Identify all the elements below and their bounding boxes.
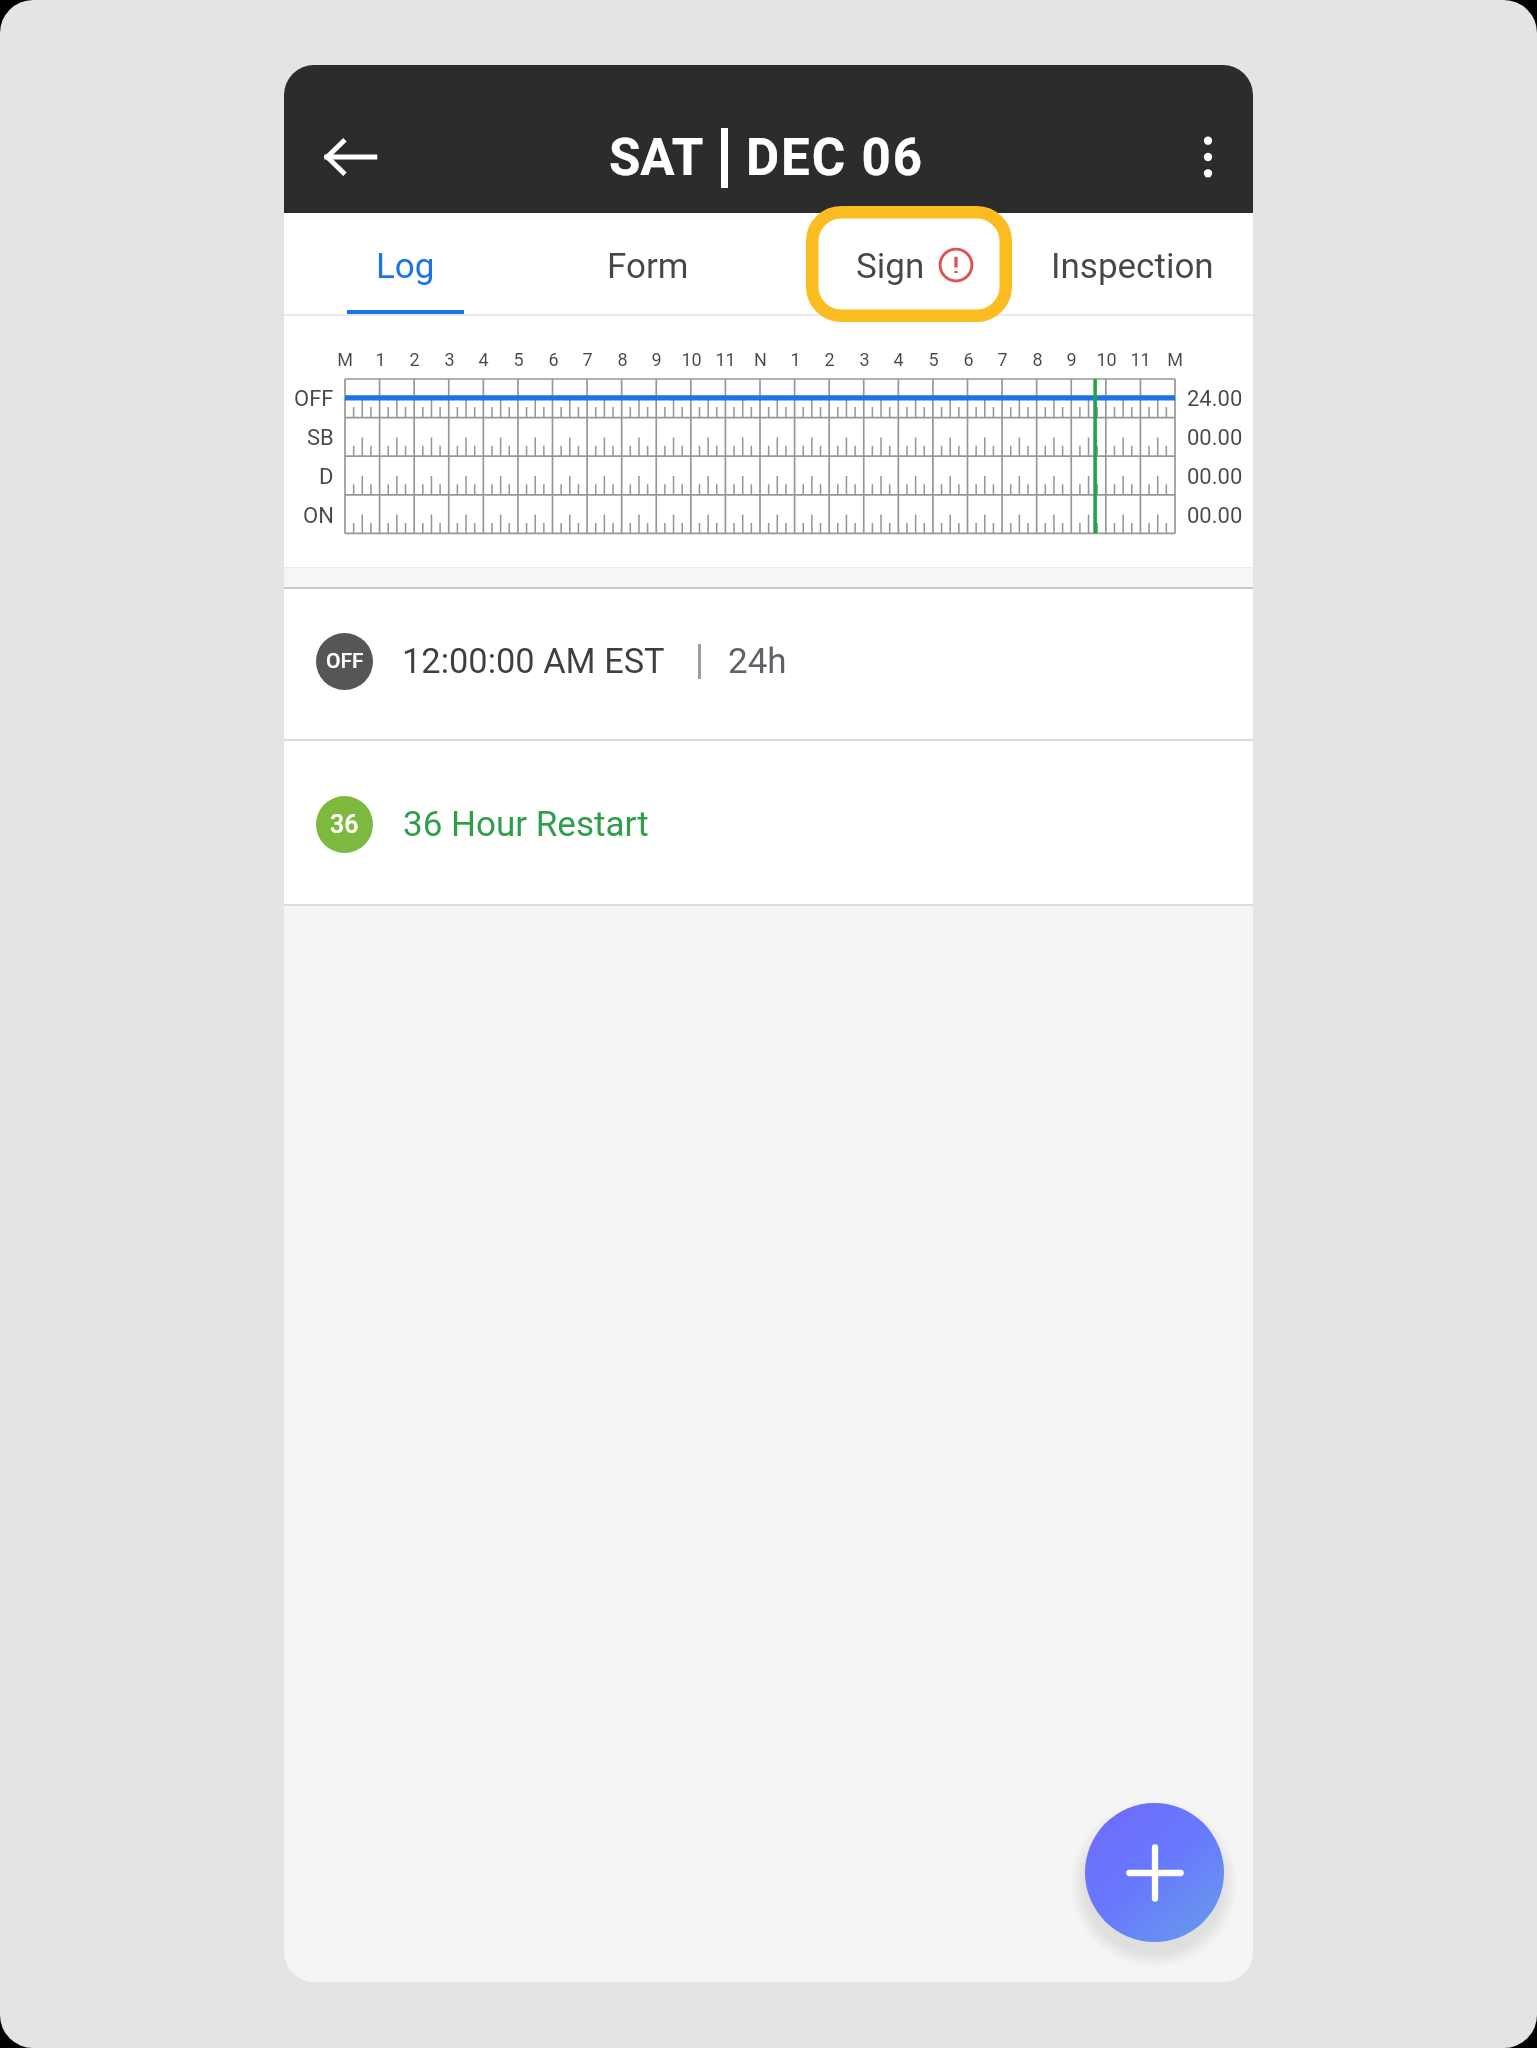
staticText: 8 bbox=[1032, 349, 1043, 370]
staticText: 11 bbox=[1130, 349, 1151, 370]
staticText: M bbox=[1167, 349, 1183, 370]
button[interactable]: Inspection bbox=[1011, 213, 1253, 316]
staticText: M bbox=[337, 349, 353, 370]
staticText: ON bbox=[303, 503, 334, 529]
staticText: OFF bbox=[294, 386, 334, 412]
staticText: 2 bbox=[409, 349, 420, 370]
staticText: 00.00 bbox=[1187, 464, 1243, 490]
staticText: 9 bbox=[651, 349, 662, 370]
staticText: D bbox=[319, 464, 334, 490]
other: Signature required bbox=[938, 247, 974, 283]
staticText: 11 bbox=[715, 349, 736, 370]
staticText: Log bbox=[376, 246, 435, 287]
button[interactable]: 36 bbox=[284, 739, 1253, 906]
staticText: Inspection bbox=[1051, 246, 1214, 287]
staticText: 36 Hour Restart bbox=[403, 804, 649, 845]
staticText: 24.00 bbox=[1187, 386, 1243, 412]
staticText: 1 bbox=[375, 349, 386, 370]
button[interactable]: Back bbox=[305, 112, 395, 202]
staticText: 1 bbox=[790, 349, 801, 370]
staticText: 00.00 bbox=[1187, 425, 1243, 451]
staticText: 4 bbox=[893, 349, 904, 370]
staticText: 9 bbox=[1066, 349, 1077, 370]
staticText: 3 bbox=[444, 349, 455, 370]
button[interactable]: Sign bbox=[769, 213, 1011, 316]
staticText: 8 bbox=[617, 349, 628, 370]
button[interactable]: OFF bbox=[284, 589, 1253, 739]
staticText: 5 bbox=[513, 349, 524, 370]
staticText: N bbox=[754, 349, 767, 370]
staticText: 24h bbox=[728, 641, 787, 682]
staticText: 12:00:00 AM EST bbox=[402, 641, 665, 681]
staticText: 3 bbox=[859, 349, 870, 370]
staticText: Sign bbox=[856, 246, 925, 287]
staticText: 6 bbox=[548, 349, 559, 370]
staticText: 7 bbox=[582, 349, 593, 370]
button[interactable]: M bbox=[284, 316, 1253, 567]
staticText: SAT bbox=[609, 128, 704, 188]
staticText: SB bbox=[307, 425, 334, 451]
staticText: 7 bbox=[997, 349, 1008, 370]
staticText: 6 bbox=[963, 349, 974, 370]
staticText: 2 bbox=[824, 349, 835, 370]
button[interactable]: Log bbox=[284, 213, 527, 316]
staticText: OFF bbox=[326, 649, 364, 674]
button[interactable]: Form bbox=[527, 213, 769, 316]
staticText: Form bbox=[607, 246, 689, 287]
staticText: 5 bbox=[928, 349, 939, 370]
staticText: DEC 06 bbox=[746, 128, 924, 188]
staticText: 36 bbox=[330, 810, 359, 839]
button[interactable]: More options bbox=[1167, 116, 1249, 198]
staticText: 00.00 bbox=[1187, 503, 1243, 529]
staticText: 4 bbox=[478, 349, 489, 370]
staticText: 10 bbox=[681, 349, 702, 370]
staticText: 10 bbox=[1096, 349, 1117, 370]
button[interactable]: Add event bbox=[1085, 1803, 1224, 1942]
